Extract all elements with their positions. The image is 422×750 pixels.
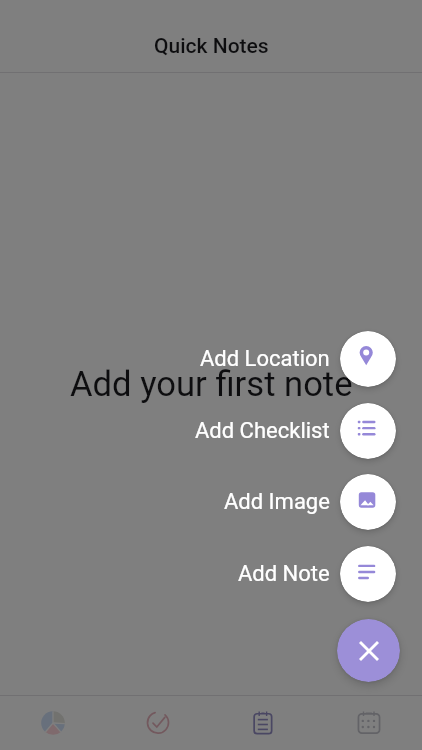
button[interactable]: Close add menu (337, 619, 400, 682)
staticText: Add Note (238, 561, 330, 587)
button[interactable]: Tasks (105, 695, 210, 750)
button[interactable]: Dismiss menu (0, 0, 422, 750)
button[interactable]: Stats (0, 695, 105, 750)
button[interactable]: Add Checklist (195, 403, 396, 459)
staticText: Quick Notes (154, 34, 269, 59)
staticText: Add Checklist (195, 418, 330, 444)
staticText: Add your first note (70, 364, 353, 405)
button[interactable]: Add Location (200, 331, 396, 387)
button[interactable]: Calendar (316, 695, 422, 750)
button[interactable]: Add Image (224, 474, 396, 530)
button[interactable]: Notes (210, 695, 316, 750)
button[interactable]: Add Note (238, 546, 396, 602)
staticText: Add Location (200, 346, 330, 372)
staticText: Add Image (224, 489, 330, 515)
